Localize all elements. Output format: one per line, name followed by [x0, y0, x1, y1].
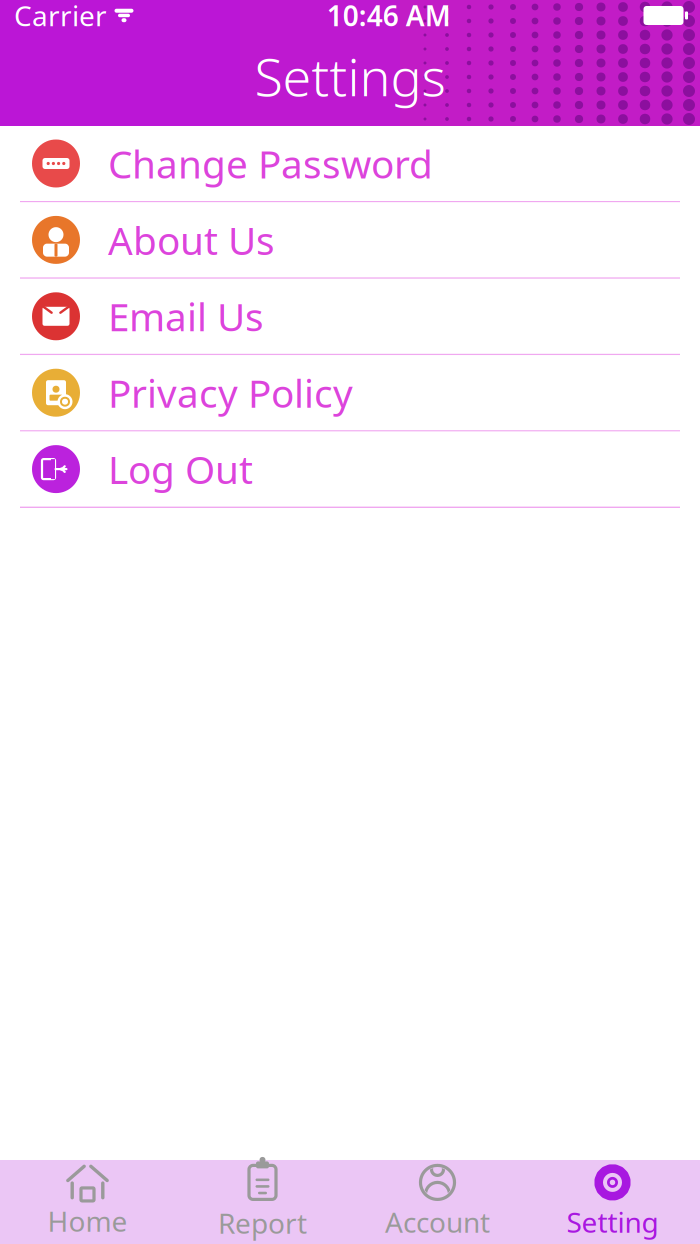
staticText: Settings	[254, 41, 445, 111]
staticText: Account	[385, 1203, 490, 1241]
button[interactable]: Account	[350, 1160, 525, 1244]
button[interactable]: Privacy Policy	[0, 355, 700, 432]
staticText: Carrier	[14, 0, 107, 34]
staticText: About Us	[108, 214, 275, 265]
button[interactable]: Email Us	[0, 279, 700, 355]
staticText: Privacy Policy	[108, 367, 353, 418]
button[interactable]: Change Password	[0, 126, 700, 202]
staticText: 10:46 AM	[327, 0, 451, 34]
staticText: Setting	[566, 1203, 658, 1241]
staticText: Report	[218, 1204, 307, 1242]
button[interactable]: Log Out	[0, 432, 700, 508]
staticText: Log Out	[108, 443, 253, 495]
staticText: Home	[47, 1202, 127, 1240]
staticText: Change Password	[108, 138, 433, 189]
button[interactable]: Report	[175, 1160, 350, 1244]
button[interactable]: Setting	[525, 1160, 700, 1244]
button[interactable]: Home	[0, 1160, 175, 1244]
staticText: Email Us	[108, 291, 264, 342]
button[interactable]: About Us	[0, 202, 700, 279]
